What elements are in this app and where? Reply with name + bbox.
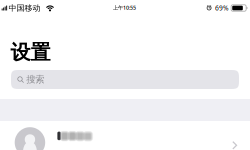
staticText: 设置 xyxy=(11,40,51,65)
staticText: 上午10:55 xyxy=(113,4,136,11)
button[interactable] xyxy=(0,121,250,150)
staticText: 69% xyxy=(215,4,229,12)
staticText: 搜索 xyxy=(26,74,44,85)
button[interactable]: 搜索 xyxy=(11,70,239,89)
button[interactable]: 设置 xyxy=(0,0,51,65)
staticText: 中国移动 xyxy=(8,3,40,13)
